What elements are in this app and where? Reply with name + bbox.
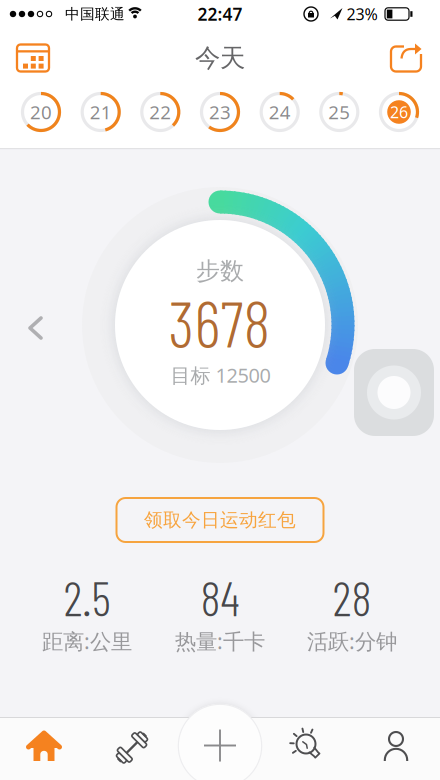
button[interactable]: 24: [254, 86, 306, 138]
button[interactable]: 25: [313, 86, 365, 138]
button[interactable]: 领取今日运动红包: [115, 496, 325, 543]
staticText: 28: [332, 568, 371, 626]
staticText: 领取今日运动红包: [144, 508, 296, 531]
staticText: 目标 12500: [170, 362, 270, 388]
button[interactable]: 21: [75, 86, 127, 138]
staticText: 2.5: [63, 568, 110, 626]
staticText: 距离:公里: [42, 627, 132, 655]
staticText: 23%: [346, 3, 377, 25]
staticText: 22:47: [197, 2, 242, 25]
staticText: 步数: [196, 256, 244, 286]
staticText: 21: [90, 100, 112, 124]
button[interactable]: [265, 716, 351, 776]
button[interactable]: 23: [194, 86, 246, 138]
button[interactable]: [23, 314, 51, 342]
button[interactable]: [384, 37, 428, 77]
staticText: 25: [328, 100, 350, 124]
button[interactable]: [353, 716, 439, 776]
staticText: 中国联通: [65, 5, 125, 23]
staticText: 3678: [168, 284, 270, 360]
staticText: 活跃:分钟: [307, 627, 397, 655]
button[interactable]: 26: [373, 86, 425, 138]
staticText: 20: [30, 100, 52, 124]
button[interactable]: [1, 716, 87, 776]
button[interactable]: 20: [15, 86, 67, 138]
button[interactable]: [89, 716, 175, 776]
staticText: 24: [269, 100, 291, 124]
staticText: 84: [200, 568, 239, 626]
staticText: 23: [209, 100, 231, 124]
staticText: 今天: [195, 42, 245, 73]
button[interactable]: [354, 349, 434, 436]
button[interactable]: [177, 716, 263, 776]
button[interactable]: 22: [134, 86, 186, 138]
button[interactable]: [11, 38, 55, 78]
staticText: 26: [390, 101, 408, 123]
staticText: 热量:千卡: [175, 627, 265, 655]
staticText: 22: [149, 100, 171, 124]
